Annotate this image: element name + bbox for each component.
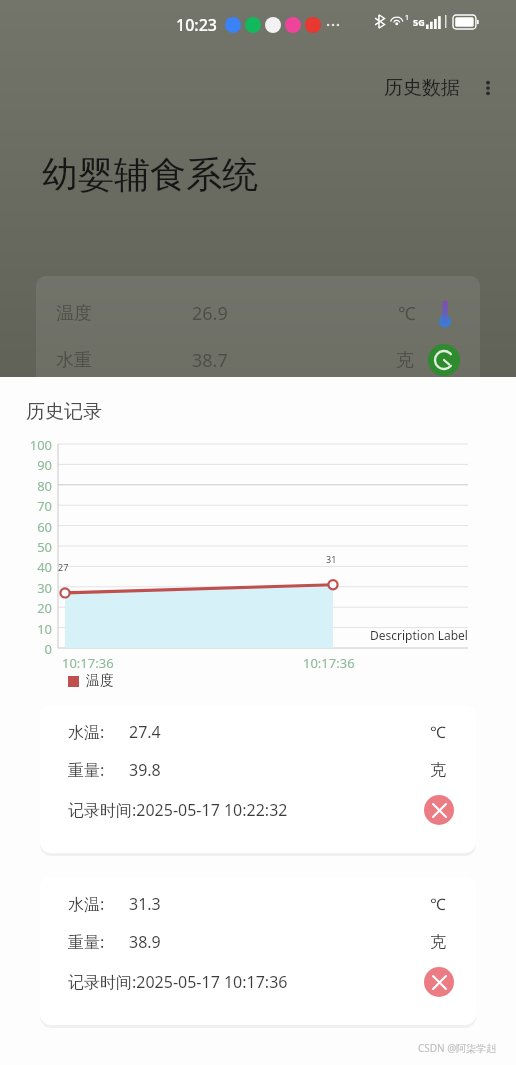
staticText: 历史数据 xyxy=(384,76,460,100)
button[interactable]: 水温: xyxy=(40,877,476,1025)
staticText: Description Label xyxy=(370,627,468,643)
staticText: 克 xyxy=(430,932,446,952)
staticText: 10:23 xyxy=(176,14,217,36)
staticText: 90 xyxy=(37,456,52,474)
staticText: 39.8 xyxy=(129,759,161,781)
staticText: 克 xyxy=(430,760,446,780)
button[interactable]: 水温: xyxy=(40,705,476,853)
staticText: 40 xyxy=(37,558,52,576)
staticText: 记录时间:2025-05-17 10:17:36 xyxy=(68,971,288,993)
staticText: 1 xyxy=(405,13,410,23)
staticText: 60 xyxy=(37,518,52,536)
staticText: 31 xyxy=(326,553,337,565)
staticText: 38.9 xyxy=(129,931,161,953)
staticText: 10:17:36 xyxy=(303,654,355,672)
staticText: 27 xyxy=(58,561,69,573)
staticText: ℃ xyxy=(398,301,416,326)
staticText: 10:17:36 xyxy=(62,654,114,672)
staticText: 20 xyxy=(37,599,52,617)
staticText: 50 xyxy=(37,538,52,556)
staticText: 记录时间:2025-05-17 10:22:32 xyxy=(68,799,288,821)
staticText: 26.9 xyxy=(192,301,228,326)
staticText: ℃ xyxy=(430,721,446,743)
staticText: 38.7 xyxy=(192,348,228,373)
staticText: 重量: xyxy=(68,931,105,953)
staticText: 30 xyxy=(37,579,52,597)
button[interactable]: More options xyxy=(466,66,510,110)
staticText: ℃ xyxy=(430,893,446,915)
staticText: 70 xyxy=(37,497,52,515)
staticText: 0 xyxy=(44,640,52,658)
staticText: 27.4 xyxy=(129,721,161,743)
staticText: 80 xyxy=(37,477,52,495)
staticText: 克 xyxy=(396,349,414,372)
staticText: 历史记录 xyxy=(26,400,102,424)
staticText: 水重 xyxy=(56,349,92,372)
staticText: 重量: xyxy=(68,759,105,781)
staticText: 31.3 xyxy=(129,893,161,915)
staticText: 100 xyxy=(29,436,52,454)
staticText: 幼婴辅食系统 xyxy=(42,152,258,197)
staticText: 温度 xyxy=(86,672,114,690)
staticText: 水温: xyxy=(68,721,105,743)
staticText: 温度 xyxy=(56,302,92,325)
button[interactable]: Delete record xyxy=(424,967,454,997)
staticText: 5G xyxy=(413,16,425,28)
staticText: 水温: xyxy=(68,893,105,915)
staticText: CSDN @阿柒学赳 xyxy=(418,1041,497,1055)
button[interactable]: Delete record xyxy=(424,795,454,825)
button[interactable]: 历史数据 xyxy=(378,70,466,106)
staticText: 10 xyxy=(37,620,52,638)
